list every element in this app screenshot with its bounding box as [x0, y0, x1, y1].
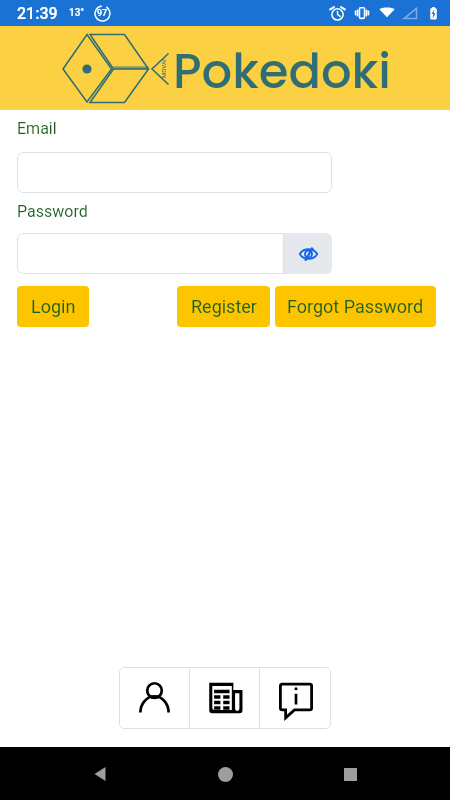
- button[interactable]: Toggle password visibility: [284, 233, 332, 274]
- button[interactable]: Recents: [326, 750, 374, 798]
- staticText: MOVAI: [160, 59, 167, 78]
- staticText: Password: [17, 202, 88, 221]
- button[interactable]: Profile: [119, 667, 189, 729]
- staticText: Login: [31, 296, 76, 317]
- staticText: 21:39: [17, 4, 58, 23]
- staticText: Forgot Password: [287, 296, 424, 317]
- button[interactable]: [17, 152, 332, 193]
- staticText: Pokedoki: [173, 38, 391, 105]
- staticText: Register: [191, 296, 257, 317]
- button[interactable]: Home: [201, 750, 249, 798]
- button[interactable]: Login: [17, 286, 89, 327]
- staticText: 13°: [69, 7, 85, 19]
- button[interactable]: News: [190, 667, 259, 729]
- staticText: 97: [97, 8, 108, 19]
- button[interactable]: Back: [77, 750, 125, 798]
- button[interactable]: [17, 233, 284, 274]
- staticText: Email: [17, 119, 57, 138]
- button[interactable]: Forgot Password: [275, 286, 436, 327]
- button[interactable]: Register: [177, 286, 270, 327]
- button[interactable]: Info: [260, 667, 331, 729]
